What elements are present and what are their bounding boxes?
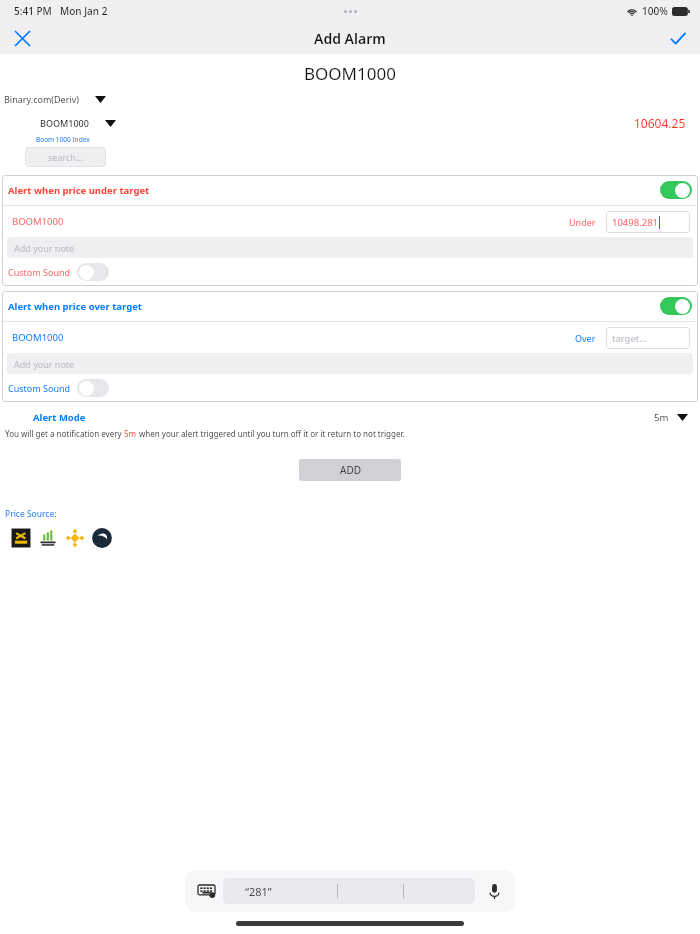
button[interactable]: Add your note [7, 237, 693, 258]
staticText: Alert when price under target [8, 184, 150, 197]
staticText: BOOM1000 [40, 117, 89, 129]
staticText: Boom 1000 Index [36, 135, 90, 144]
staticText: Price Source: [5, 508, 57, 520]
staticText: BOOM1000 [304, 62, 396, 85]
button[interactable]: Exness [10, 527, 32, 549]
staticText: Under [569, 216, 596, 228]
button[interactable]: Alert when price over target [2, 291, 698, 321]
button[interactable]: Toggle off [77, 263, 109, 281]
staticText: 100% [642, 4, 668, 18]
staticText: 5m [124, 428, 137, 439]
staticText: Binary.com(Deriv) [4, 93, 79, 105]
staticText: Add your note [14, 242, 75, 254]
staticText: Alert when price over target [8, 300, 142, 313]
staticText: when your alert triggered until you turn… [137, 428, 405, 439]
button[interactable]: Toggle off [77, 379, 109, 397]
staticText: 10604.25 [634, 115, 686, 131]
staticText: 5m [654, 411, 669, 424]
button[interactable]: Keyboard [193, 878, 219, 904]
staticText: Custom Sound [8, 266, 71, 278]
button[interactable]: Binance [64, 527, 86, 549]
button[interactable]: target... [606, 327, 690, 349]
button[interactable]: 5m [654, 411, 688, 424]
staticText: Over [575, 332, 596, 344]
staticText: 5:41 PM [14, 4, 52, 18]
staticText: Alert Mode [33, 411, 86, 424]
button[interactable]: Toggle on [660, 181, 692, 199]
button[interactable]: BOOM1000 [40, 117, 116, 129]
button[interactable]: Deriv [91, 527, 113, 549]
staticText: Add Alarm [314, 29, 386, 48]
button[interactable]: IC Markets [37, 527, 59, 549]
staticText: Add your note [14, 358, 75, 370]
button[interactable]: 10498.281 [606, 211, 690, 233]
button[interactable]: Alert Mode [33, 411, 86, 424]
button[interactable]: ADD [299, 459, 401, 481]
staticText: target... [612, 332, 647, 345]
staticText: “281” [245, 884, 272, 899]
button[interactable]: Custom Sound [2, 374, 698, 402]
staticText: You will get a notification every [5, 428, 124, 439]
button[interactable]: Toggle on [660, 297, 692, 315]
button[interactable]: Add your note [7, 353, 693, 374]
staticText: BOOM1000 [12, 331, 64, 344]
button[interactable]: Dictation [481, 878, 507, 904]
button[interactable]: “281” [223, 878, 475, 904]
button[interactable]: Confirm [664, 24, 692, 52]
staticText: Custom Sound [8, 382, 71, 394]
staticText: 10498.281 [612, 216, 659, 229]
staticText: ADD [340, 463, 361, 477]
button[interactable]: search... [25, 147, 106, 167]
staticText: Mon Jan 2 [60, 4, 108, 18]
button[interactable]: Alert when price under target [2, 175, 698, 205]
staticText: BOOM1000 [12, 215, 64, 228]
staticText: search... [48, 151, 84, 163]
button[interactable]: Custom Sound [2, 258, 698, 286]
button[interactable]: Close [8, 24, 36, 52]
button[interactable]: Binary.com(Deriv) [4, 93, 106, 105]
